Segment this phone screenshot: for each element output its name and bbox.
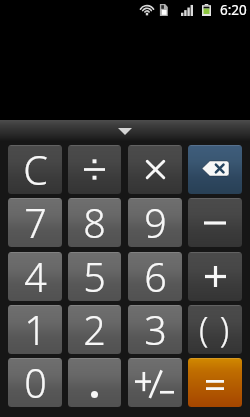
staticText: 5 xyxy=(83,252,106,299)
button[interactable]: Plus minus xyxy=(128,358,182,407)
button[interactable]: 2 xyxy=(68,305,121,354)
staticText: C xyxy=(23,145,48,192)
button[interactable]: 8 xyxy=(68,198,121,247)
staticText: 1 xyxy=(24,305,47,352)
staticText: 0 xyxy=(24,358,47,405)
button[interactable]: Equals xyxy=(188,358,242,407)
other: Plus minus xyxy=(135,367,175,399)
button[interactable]: 0 xyxy=(8,358,62,407)
staticText: 9 xyxy=(144,198,167,245)
other: Delete xyxy=(202,161,229,176)
other: Equals xyxy=(206,380,224,390)
staticText: 2 xyxy=(83,305,106,352)
button[interactable]: C xyxy=(8,145,62,194)
button[interactable]: Divide xyxy=(68,145,121,194)
button[interactable]: ( ) xyxy=(188,305,242,354)
staticText: 3 xyxy=(144,305,167,352)
other: Decimal point xyxy=(91,391,98,398)
other: Divide xyxy=(84,159,105,180)
button[interactable]: Multiply xyxy=(128,145,182,194)
other: Minus xyxy=(204,221,226,225)
button[interactable]: 3 xyxy=(128,305,182,354)
button[interactable]: 7 xyxy=(8,198,62,247)
button[interactable]: Plus xyxy=(188,252,242,301)
button[interactable]: 5 xyxy=(68,252,121,301)
button[interactable]: 9 xyxy=(128,198,182,247)
button[interactable]: Decimal point xyxy=(68,358,121,407)
button[interactable]: 6 xyxy=(128,252,182,301)
button[interactable]: 4 xyxy=(8,252,62,301)
other: Plus xyxy=(205,266,226,287)
other: Multiply xyxy=(146,160,165,179)
staticText: 6 xyxy=(144,252,167,299)
button[interactable]: Delete xyxy=(188,145,242,194)
staticText: ( ) xyxy=(199,306,231,352)
staticText: 4 xyxy=(24,252,47,299)
staticText: 7 xyxy=(24,198,47,245)
staticText: 6:20 xyxy=(220,1,247,19)
button[interactable]: 1 xyxy=(8,305,62,354)
staticText: 8 xyxy=(83,198,106,245)
button[interactable]: Minus xyxy=(188,198,242,247)
